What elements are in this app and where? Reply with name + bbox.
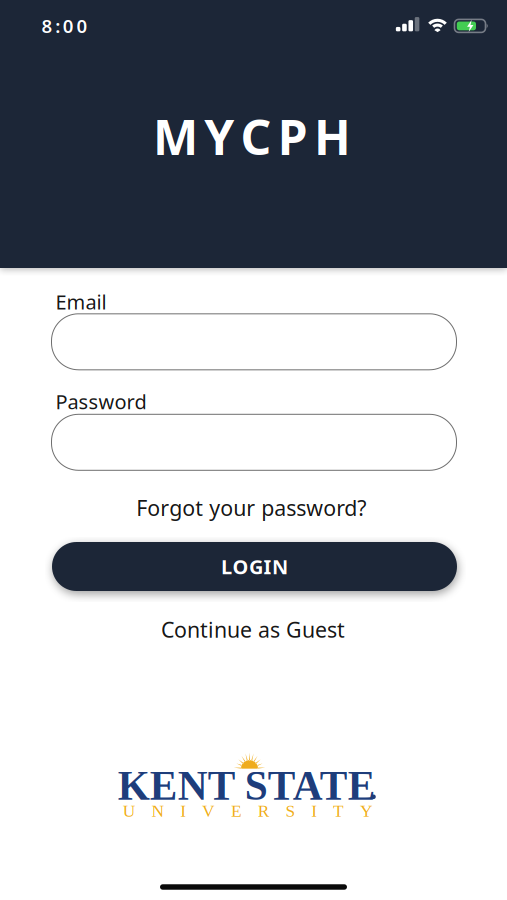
staticText: G bbox=[249, 553, 263, 580]
staticText: Email bbox=[55, 288, 106, 315]
staticText: M bbox=[153, 104, 198, 169]
button[interactable]: Forgot your password? bbox=[136, 493, 366, 522]
staticText: S bbox=[285, 801, 295, 821]
staticText: Continue as Guest bbox=[161, 615, 345, 644]
staticText: : bbox=[55, 13, 60, 38]
staticText: 8 bbox=[42, 13, 53, 38]
button[interactable] bbox=[51, 314, 456, 370]
staticText: N bbox=[151, 801, 164, 821]
staticText: KENT STATE bbox=[118, 763, 376, 809]
staticText: T bbox=[333, 801, 344, 821]
staticText: Y bbox=[204, 104, 234, 169]
staticText: L bbox=[221, 553, 232, 580]
staticText: R bbox=[258, 801, 270, 821]
staticText: 0 bbox=[76, 13, 87, 38]
staticText: N bbox=[272, 553, 288, 580]
staticText: E bbox=[231, 801, 242, 821]
staticText: C bbox=[240, 104, 271, 169]
staticText: P bbox=[278, 104, 308, 169]
staticText: I bbox=[180, 801, 186, 821]
button[interactable]: L bbox=[52, 542, 457, 591]
staticText: 0 bbox=[63, 13, 74, 38]
staticText: I bbox=[311, 801, 317, 821]
button[interactable]: Continue as Guest bbox=[161, 615, 345, 644]
staticText: Y bbox=[360, 801, 373, 821]
staticText: V bbox=[202, 801, 215, 821]
staticText: Forgot your password? bbox=[136, 493, 366, 522]
staticText: O bbox=[232, 553, 248, 580]
staticText: U bbox=[123, 801, 136, 821]
staticText: H bbox=[314, 104, 351, 169]
staticText: Password bbox=[55, 388, 146, 415]
staticText: I bbox=[263, 553, 271, 580]
button[interactable] bbox=[51, 414, 456, 470]
